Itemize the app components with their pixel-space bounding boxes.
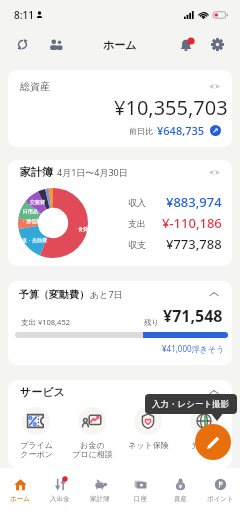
- button[interactable]: サービスを折りたたむ: [206, 384, 222, 400]
- button[interactable]: 予算を折りたたむ: [206, 286, 222, 302]
- button[interactable]: 入出金: [40, 468, 80, 521]
- staticText: プライム クーポン: [20, 440, 53, 460]
- staticText: 資産: [174, 495, 187, 503]
- button[interactable]: 設定: [206, 33, 229, 56]
- staticText: 食費: [78, 226, 88, 232]
- button[interactable]: 入力・レシート撮影: [145, 394, 237, 414]
- staticText: 家計簿: [20, 165, 53, 179]
- staticText: 入出金: [50, 495, 70, 503]
- staticText: 4月1日〜4月30日: [57, 166, 128, 178]
- staticText: 8:11: [14, 8, 34, 22]
- staticText: 家計簿: [90, 495, 110, 503]
- staticText: ¥41,000浮きそう: [162, 343, 225, 354]
- button[interactable]: グループ: [44, 33, 67, 56]
- staticText: 光回線: [192, 440, 216, 450]
- button[interactable]: 金額の表示切替: [206, 164, 222, 180]
- staticText: お金の プロに相談: [72, 440, 113, 460]
- staticText: 支出: [128, 218, 146, 229]
- button[interactable]: プライム クーポン: [8, 407, 64, 460]
- button[interactable]: 家計簿: [80, 468, 120, 521]
- staticText: ¥71,548: [163, 305, 223, 327]
- staticText: 交際費: [30, 199, 45, 205]
- button[interactable]: 金額の表示切替: [206, 78, 222, 94]
- button[interactable]: 詳細: [210, 125, 221, 136]
- staticText: ネット保険: [128, 440, 169, 450]
- button[interactable]: 光回線: [176, 407, 232, 450]
- staticText: 収入: [128, 197, 146, 208]
- button[interactable]: 更新: [11, 33, 34, 56]
- button[interactable]: ネット保険: [120, 407, 176, 450]
- staticText: 予算（変動費）: [19, 288, 89, 301]
- staticText: ・通信費: [21, 218, 41, 224]
- staticText: 道・光熱費: [22, 237, 47, 243]
- staticText: ¥648,735: [157, 123, 205, 138]
- staticText: ¥-110,186: [162, 214, 222, 232]
- staticText: 入力・レシート撮影: [152, 399, 230, 410]
- button[interactable]: ポイント: [200, 468, 240, 521]
- staticText: 前日比: [129, 126, 153, 136]
- staticText: 日用品: [23, 208, 38, 214]
- button[interactable]: 口座: [120, 468, 160, 521]
- staticText: 支出 ¥108,452: [21, 317, 70, 327]
- button[interactable]: 入力・レシート撮影: [195, 424, 231, 460]
- button[interactable]: お知らせ: [174, 33, 197, 56]
- staticText: ポイント: [207, 495, 234, 503]
- staticText: サービス: [20, 385, 65, 399]
- staticText: 残り: [144, 318, 160, 327]
- button[interactable]: 資産: [160, 468, 200, 521]
- staticText: 収支: [128, 239, 146, 250]
- staticText: 総資産: [20, 80, 50, 93]
- staticText: あと7日: [90, 288, 123, 300]
- staticText: ホーム: [10, 495, 30, 503]
- button[interactable]: ホーム: [0, 468, 40, 521]
- staticText: ホーム: [103, 38, 137, 52]
- staticText: ¥883,974: [166, 193, 222, 211]
- button[interactable]: お金の プロに相談: [64, 407, 120, 460]
- staticText: ¥773,788: [166, 235, 222, 253]
- staticText: ¥10,355,703: [114, 94, 228, 121]
- staticText: 口座: [134, 495, 147, 503]
